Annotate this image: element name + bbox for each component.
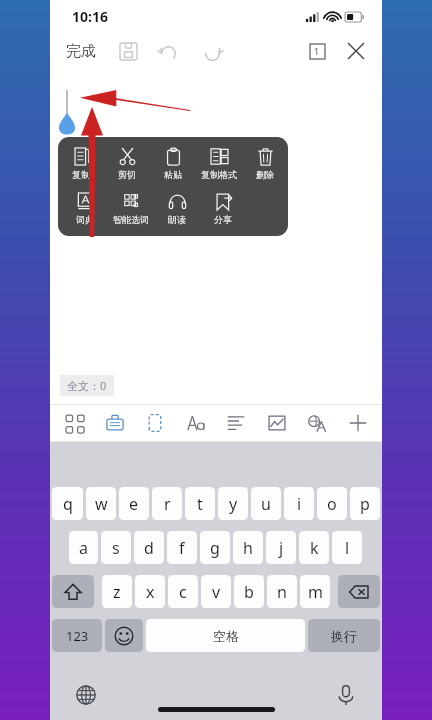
button[interactable]: Voice input: [332, 681, 360, 709]
staticText: 换行: [331, 628, 357, 644]
staticText: 123: [66, 627, 89, 645]
button[interactable]: m: [300, 575, 330, 608]
staticText: g: [210, 537, 220, 559]
staticText: y: [229, 493, 238, 515]
button[interactable]: 智能选词: [108, 191, 154, 227]
button[interactable]: 朗读: [154, 191, 200, 227]
staticText: q: [63, 493, 73, 515]
button[interactable]: j: [266, 531, 296, 564]
staticText: h: [243, 537, 253, 559]
staticText: k: [310, 537, 319, 559]
staticText: u: [261, 493, 271, 515]
button[interactable]: 删除: [242, 146, 288, 182]
staticText: i: [297, 493, 302, 515]
button[interactable]: 复制格式: [196, 146, 242, 182]
button[interactable]: Close: [342, 37, 370, 65]
staticText: j: [279, 537, 284, 559]
button[interactable]: 全文：0: [60, 375, 114, 396]
staticText: v: [212, 581, 221, 603]
button[interactable]: h: [233, 531, 263, 564]
button[interactable]: n: [267, 575, 297, 608]
staticText: b: [244, 581, 254, 603]
button[interactable]: Insert card: [99, 407, 131, 439]
button[interactable]: 换行: [308, 619, 380, 652]
button[interactable]: l: [332, 531, 362, 564]
button[interactable]: o: [317, 487, 347, 520]
button[interactable]: y: [218, 487, 248, 520]
button[interactable]: q: [52, 487, 83, 520]
staticText: 删除: [256, 169, 274, 180]
button[interactable]: Page: [139, 407, 171, 439]
staticText: 粘贴: [164, 169, 182, 180]
button[interactable]: d: [134, 531, 164, 564]
staticText: f: [179, 537, 185, 559]
button[interactable]: More: [342, 407, 374, 439]
staticText: 全文：0: [67, 378, 107, 393]
staticText: 10:16: [72, 7, 108, 26]
button[interactable]: Translate: [301, 407, 333, 439]
button[interactable]: f: [167, 531, 197, 564]
staticText: d: [144, 537, 154, 559]
button[interactable]: Backspace: [338, 575, 380, 608]
staticText: a: [79, 537, 88, 559]
button[interactable]: g: [200, 531, 230, 564]
button[interactable]: 剪切: [104, 146, 150, 182]
button[interactable]: Redo: [198, 37, 226, 65]
button[interactable]: Apps: [58, 407, 90, 439]
staticText: p: [360, 493, 370, 515]
staticText: s: [112, 537, 120, 559]
button[interactable]: x: [135, 575, 165, 608]
button[interactable]: c: [168, 575, 198, 608]
button[interactable]: b: [234, 575, 264, 608]
staticText: 复制: [72, 169, 90, 180]
button[interactable]: z: [102, 575, 132, 608]
button[interactable]: s: [101, 531, 131, 564]
button[interactable]: Image: [261, 407, 293, 439]
button[interactable]: Change language: [72, 681, 100, 709]
staticText: x: [146, 581, 155, 603]
button[interactable]: Pages: [304, 38, 330, 64]
button[interactable]: Emoji: [105, 619, 143, 652]
staticText: 完成: [66, 42, 96, 61]
button[interactable]: t: [185, 487, 215, 520]
button[interactable]: p: [350, 487, 380, 520]
button[interactable]: Save: [114, 37, 142, 65]
staticText: l: [345, 537, 350, 559]
button[interactable]: k: [299, 531, 329, 564]
staticText: z: [113, 581, 121, 603]
button[interactable]: w: [86, 487, 116, 520]
button[interactable]: 完成: [60, 38, 102, 65]
button[interactable]: 分享: [200, 191, 246, 227]
staticText: 分享: [214, 214, 232, 225]
staticText: c: [179, 581, 187, 603]
button[interactable]: 词典: [62, 191, 108, 227]
staticText: 智能选词: [113, 214, 149, 225]
staticText: 词典: [76, 214, 94, 225]
staticText: w: [95, 493, 108, 515]
button[interactable]: 空格: [146, 619, 305, 652]
button[interactable]: u: [251, 487, 281, 520]
button[interactable]: 粘贴: [150, 146, 196, 182]
staticText: 复制格式: [201, 169, 237, 180]
button[interactable]: a: [69, 531, 98, 564]
button[interactable]: Paragraph: [220, 407, 252, 439]
button[interactable]: Font: [180, 407, 212, 439]
button[interactable]: 123: [52, 619, 102, 652]
staticText: 空格: [213, 628, 239, 644]
staticText: r: [164, 493, 171, 515]
button[interactable]: i: [284, 487, 314, 520]
staticText: e: [129, 493, 139, 515]
button[interactable]: 复制: [58, 146, 104, 182]
button[interactable]: r: [152, 487, 182, 520]
button[interactable]: Shift: [52, 575, 94, 608]
staticText: m: [308, 581, 323, 603]
staticText: 剪切: [118, 169, 136, 180]
staticText: 1: [314, 45, 320, 57]
button[interactable]: Undo: [154, 37, 182, 65]
staticText: o: [327, 493, 337, 515]
staticText: t: [197, 493, 203, 515]
staticText: n: [277, 581, 287, 603]
button[interactable]: e: [119, 487, 149, 520]
staticText: 朗读: [168, 214, 186, 225]
button[interactable]: v: [201, 575, 231, 608]
